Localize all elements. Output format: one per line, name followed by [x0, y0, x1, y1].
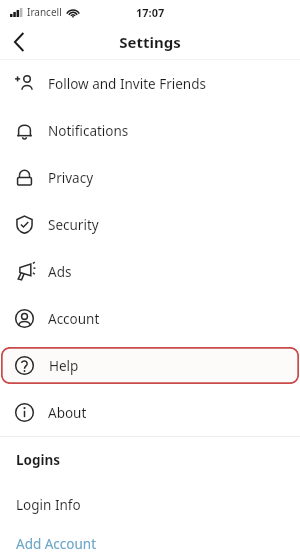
button[interactable]: Ads	[0, 248, 300, 295]
staticText: 17:07	[136, 5, 165, 20]
staticText: Account	[48, 310, 100, 328]
button[interactable]: Notifications	[0, 107, 300, 154]
button[interactable]: Add Account	[0, 528, 300, 560]
staticText: Help	[49, 357, 79, 375]
button[interactable]: Privacy	[0, 154, 300, 201]
staticText: Login Info	[16, 496, 81, 514]
button[interactable]: Login Info	[0, 482, 300, 528]
staticText: Logins	[16, 451, 61, 469]
staticText: Ads	[48, 263, 72, 281]
staticText: Add Account	[16, 535, 97, 553]
staticText: Notifications	[48, 122, 129, 140]
staticText: Privacy	[48, 169, 94, 187]
button[interactable]: Account	[0, 295, 300, 342]
staticText: About	[48, 404, 87, 422]
staticText: Settings	[119, 32, 181, 52]
staticText: Irancell	[27, 5, 62, 19]
staticText: Follow and Invite Friends	[48, 75, 206, 93]
button[interactable]: Back	[0, 24, 38, 59]
button[interactable]: Help	[1, 347, 299, 384]
staticText: Security	[48, 216, 99, 234]
button[interactable]: Follow and Invite Friends	[0, 60, 300, 107]
button[interactable]: Security	[0, 201, 300, 248]
button[interactable]: About	[0, 389, 300, 436]
